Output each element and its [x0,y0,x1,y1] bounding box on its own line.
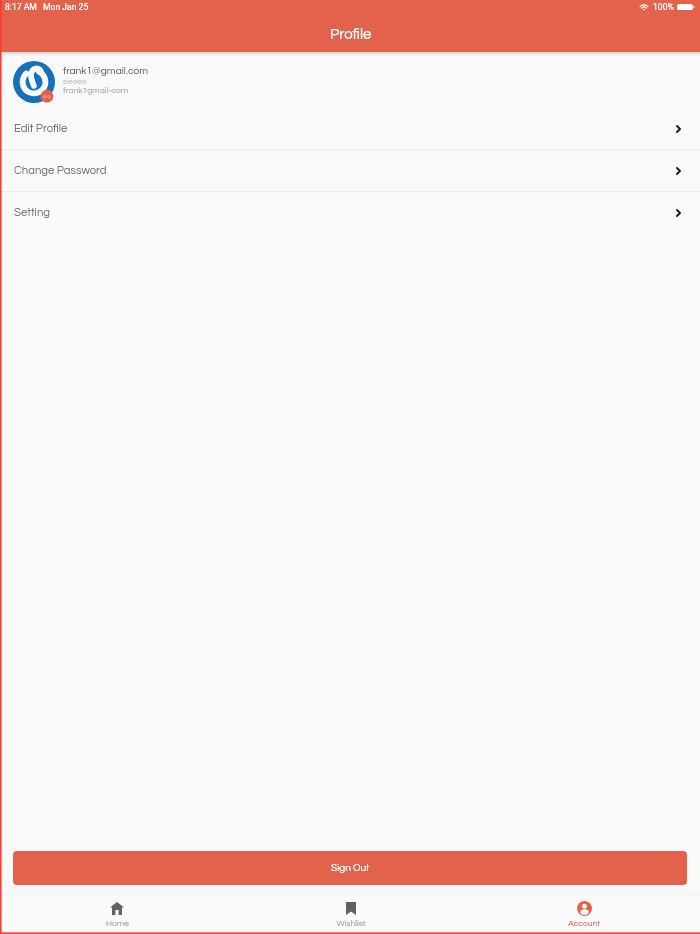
staticText: Profile [330,27,372,42]
button[interactable]: Change Password [0,150,700,191]
button[interactable]: Wishlist [234,895,467,934]
staticText: Edit Profile [14,123,68,135]
staticText: frank1gmail-com [63,86,129,95]
staticText: Sign Out [331,863,370,873]
staticText: 8:17 AM [5,2,37,12]
button[interactable]: Sign Out [13,851,687,885]
button[interactable]: Setting [0,192,700,233]
button[interactable]: frank1@gmail.com [0,52,700,108]
staticText: eeeee [63,77,87,86]
staticText: Account [568,919,600,928]
button[interactable]: Edit Profile [0,108,700,149]
staticText: Change Password [14,165,107,177]
staticText: Mon Jan 25 [43,2,89,12]
staticText: Wishlist [336,919,366,928]
button[interactable]: Home [0,895,234,934]
staticText: 100% [653,2,674,12]
button[interactable]: Account [467,895,700,934]
staticText: frank1@gmail.com [63,66,149,77]
staticText: Home [106,919,129,928]
staticText: Setting [14,207,51,219]
